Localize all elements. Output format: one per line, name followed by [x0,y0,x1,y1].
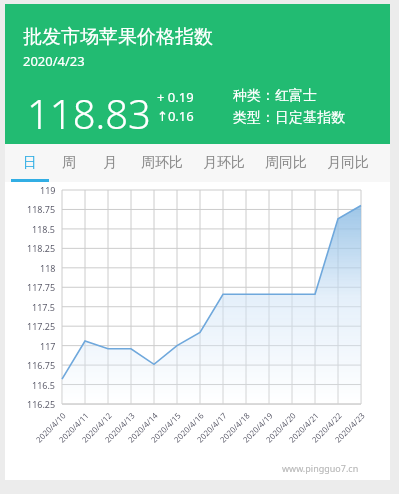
staticText: 月环比 [203,154,245,172]
staticText: 月 [103,154,117,172]
staticText: 批发市场苹果价格指数 [23,25,213,49]
staticText: 周同比 [265,154,307,172]
staticText: 周环比 [141,154,183,172]
button[interactable]: 月环比 [193,144,255,182]
staticText: 周 [62,154,76,172]
staticText: 118.83 [27,86,151,140]
staticText: + 0.19 [157,88,194,106]
button[interactable]: 月 [89,144,131,182]
button[interactable]: 日 [11,144,49,182]
staticText: 类型：日定基指数 [233,109,345,127]
button[interactable]: 周环比 [131,144,193,182]
button[interactable]: 周 [49,144,89,182]
button[interactable]: 周同比 [255,144,317,182]
staticText: 种类：红富士 [233,87,317,105]
staticText: 月同比 [327,154,369,172]
button[interactable]: 月同比 [317,144,379,182]
staticText: ↑0.16 [157,107,194,125]
staticText: 日 [23,154,37,172]
staticText: 2020/4/23 [23,52,85,70]
